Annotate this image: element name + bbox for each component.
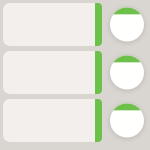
button[interactable] [0,3,150,46]
button[interactable] [0,51,150,94]
button[interactable] [0,99,150,142]
